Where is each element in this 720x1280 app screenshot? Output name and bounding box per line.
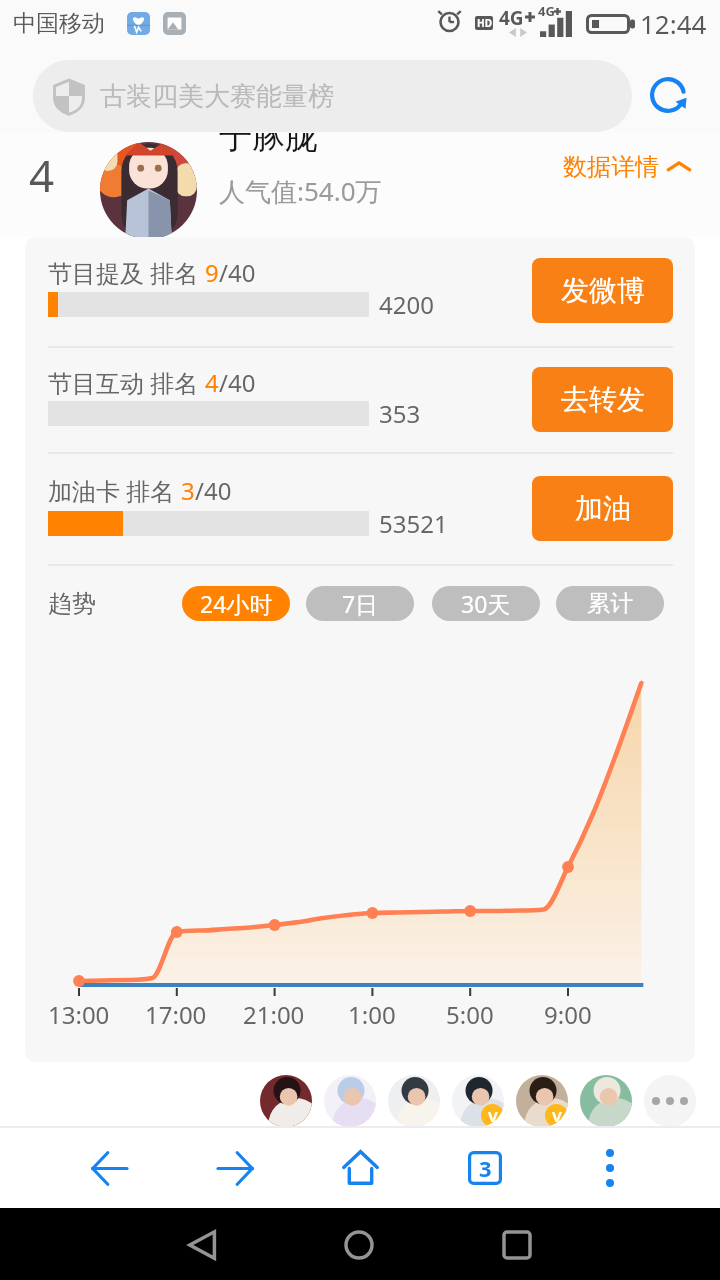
button[interactable]: Fan 4 <box>452 1075 504 1127</box>
staticText: /40 <box>219 366 256 399</box>
button[interactable]: 去转发 <box>532 367 673 432</box>
staticText: 3 <box>479 1153 492 1183</box>
staticText: /40 <box>195 474 232 507</box>
staticText: 1:00 <box>348 998 396 1031</box>
staticText: 17:00 <box>145 998 207 1031</box>
button[interactable]: Fan 3 <box>388 1075 440 1127</box>
staticText: 古装四美大赛能量榜 <box>100 80 334 113</box>
staticText: 12:44 <box>640 6 707 41</box>
button[interactable]: More <box>644 1075 696 1127</box>
staticText: 9 <box>205 256 219 289</box>
button[interactable]: Back <box>79 1138 139 1198</box>
staticText: 加油 <box>575 491 631 526</box>
button[interactable]: Fan 6 <box>580 1075 632 1127</box>
staticText: 3 <box>181 474 195 507</box>
staticText: 趋势 <box>48 589 96 619</box>
button[interactable]: Refresh <box>640 67 696 123</box>
button[interactable]: 发微博 <box>532 258 673 323</box>
staticText: V <box>488 1106 498 1126</box>
button[interactable]: 古装四美大赛能量榜 <box>33 60 632 132</box>
staticText: 4 <box>29 145 55 195</box>
button[interactable]: 7日 <box>306 586 414 621</box>
button[interactable]: Fan 5 <box>516 1075 568 1127</box>
button[interactable]: 24小时 <box>182 586 290 621</box>
button[interactable]: Menu <box>580 1138 640 1198</box>
staticText: 13:00 <box>48 998 110 1031</box>
button[interactable]: 累计 <box>556 586 664 621</box>
staticText: 9:00 <box>544 998 592 1031</box>
staticText: 4 <box>205 366 219 399</box>
staticText: 人气值:54.0万 <box>219 173 382 209</box>
staticText: 353 <box>379 397 421 430</box>
staticText: 数据详情 <box>563 152 659 182</box>
staticText: 加油卡 排名 <box>48 474 181 507</box>
button[interactable]: Tabs <box>455 1138 515 1198</box>
staticText: 于豚胧 <box>219 116 318 158</box>
button[interactable]: Avatar <box>100 142 197 239</box>
staticText: 24小时 <box>200 588 273 619</box>
staticText: /40 <box>219 256 256 289</box>
staticText: 中国移动 <box>13 9 105 38</box>
staticText: HD <box>477 16 492 30</box>
staticText: 去转发 <box>561 382 645 417</box>
staticText: 节目提及 排名 <box>48 256 205 289</box>
button[interactable]: Fan 1 <box>260 1075 312 1127</box>
staticText: 21:00 <box>243 998 305 1031</box>
staticText: 4G <box>538 2 555 20</box>
staticText: 累计 <box>587 589 633 618</box>
staticText: V <box>552 1106 562 1126</box>
button[interactable]: 加油 <box>532 476 673 541</box>
staticText: 5:00 <box>446 998 494 1031</box>
button[interactable]: Fan 2 <box>324 1075 376 1127</box>
staticText: 4200 <box>379 288 434 321</box>
staticText: 7日 <box>342 588 379 619</box>
staticText: 发微博 <box>561 273 645 308</box>
button[interactable]: 30天 <box>432 586 540 621</box>
button[interactable]: 数据详情 <box>563 152 691 182</box>
button[interactable]: Forward <box>205 1138 265 1198</box>
staticText: 节目互动 排名 <box>48 366 205 399</box>
button[interactable]: Home <box>330 1138 390 1198</box>
staticText: 53521 <box>379 507 448 540</box>
staticText: 4G <box>499 5 524 31</box>
staticText: 30天 <box>461 588 511 619</box>
